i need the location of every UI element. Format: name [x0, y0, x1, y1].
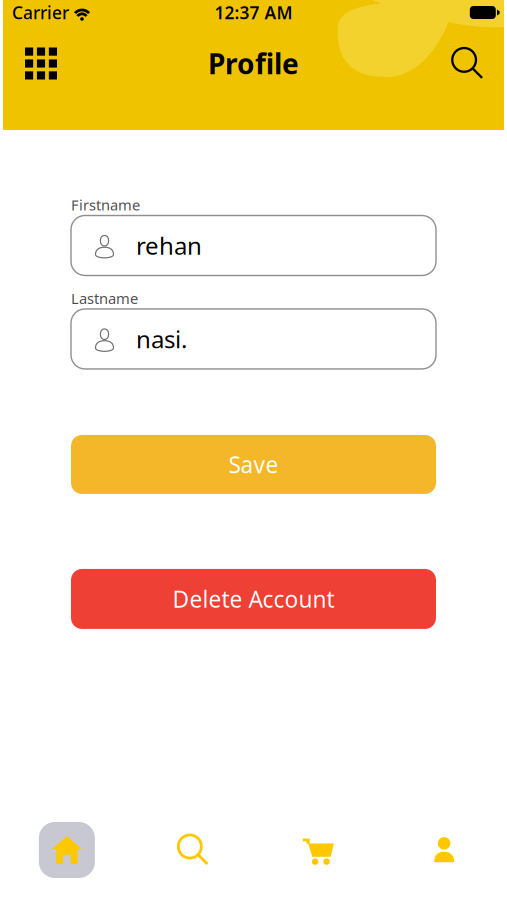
staticText: Save: [228, 449, 278, 479]
button[interactable]: Home: [4, 814, 130, 886]
staticText: Firstname: [71, 195, 140, 214]
button[interactable]: Save: [71, 435, 436, 494]
staticText: rehan: [136, 229, 202, 261]
staticText: 12:37 AM: [214, 1, 292, 24]
staticText: Carrier: [12, 1, 69, 24]
button[interactable]: rehan: [71, 215, 436, 275]
staticText: Profile: [208, 45, 299, 82]
button[interactable]: nasi.: [71, 309, 436, 369]
button[interactable]: Search: [130, 814, 256, 886]
button[interactable]: Cart: [255, 814, 381, 886]
button[interactable]: Delete Account: [71, 569, 436, 629]
button[interactable]: Search: [443, 39, 491, 87]
staticText: Delete Account: [172, 584, 334, 614]
button[interactable]: Profile: [381, 814, 507, 886]
staticText: nasi.: [136, 323, 187, 355]
staticText: Lastname: [71, 288, 138, 308]
button[interactable]: Menu: [17, 39, 65, 87]
